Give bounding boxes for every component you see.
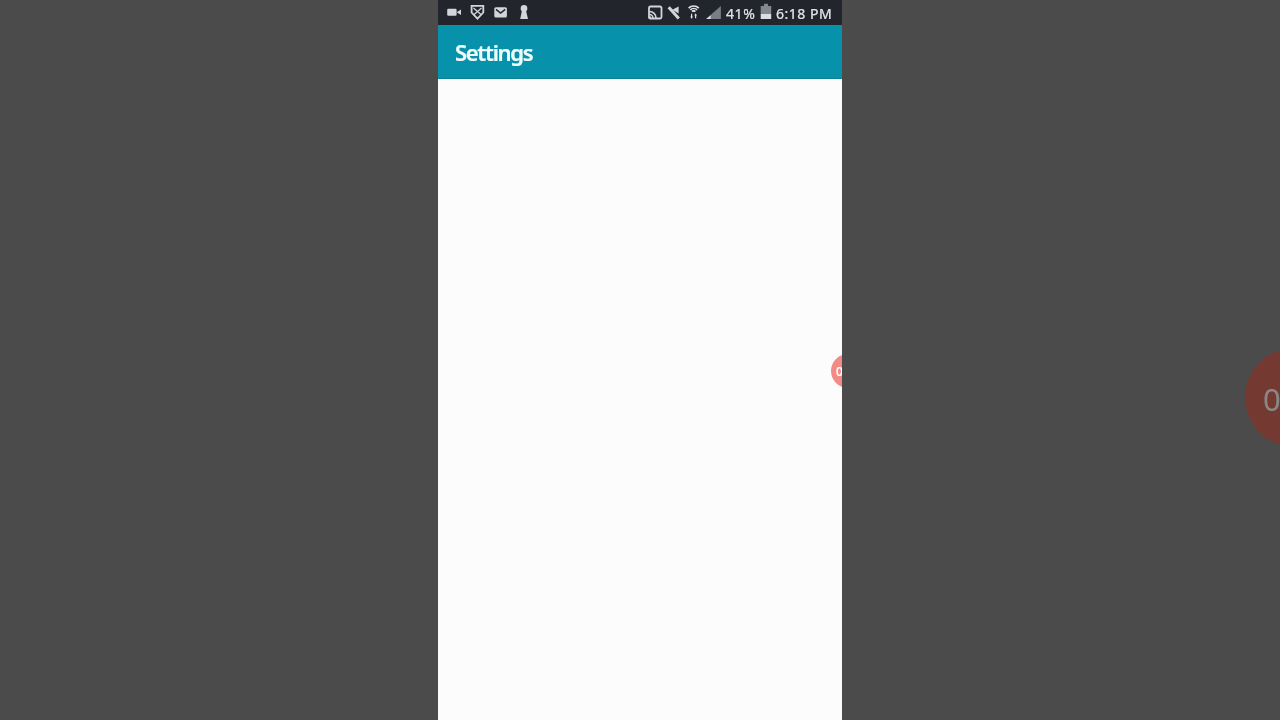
- staticText: 0: [1263, 378, 1280, 420]
- staticText: 41%: [726, 4, 756, 23]
- button[interactable]: 0: [831, 354, 842, 388]
- staticText: 0: [836, 363, 842, 379]
- staticText: Settings: [455, 37, 533, 67]
- staticText: 6:18 PM: [776, 4, 833, 23]
